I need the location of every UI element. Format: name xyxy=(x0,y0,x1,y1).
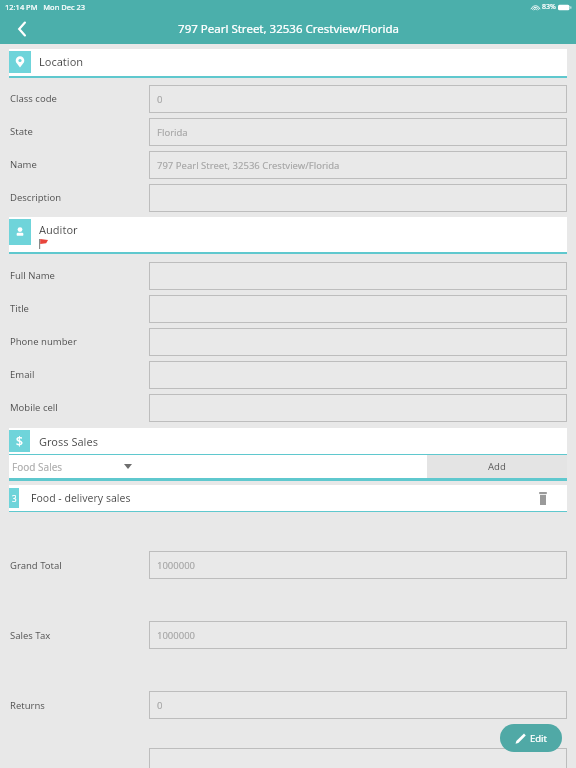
staticText: Gross Sales xyxy=(39,434,98,449)
button[interactable]: Food Sales xyxy=(9,455,427,478)
staticText: Name xyxy=(10,158,37,171)
button[interactable]: State xyxy=(0,115,576,148)
staticText: Title xyxy=(10,302,29,315)
button[interactable]: Delete xyxy=(533,488,553,508)
staticText: Food - delivery sales xyxy=(31,491,131,505)
button[interactable]: Phone number xyxy=(0,325,576,358)
staticText: Mobile cell xyxy=(10,401,58,414)
staticText: Class code xyxy=(10,92,57,105)
staticText: Location xyxy=(39,54,84,69)
staticText: Edit xyxy=(530,732,548,745)
staticText: Grand Total xyxy=(10,559,62,572)
staticText: 3 xyxy=(12,493,17,504)
staticText: 1000000 xyxy=(157,559,196,572)
button[interactable]: Location xyxy=(9,49,567,78)
button[interactable]: Edit xyxy=(500,724,562,752)
staticText: 1000000 xyxy=(157,629,196,642)
staticText: Returns xyxy=(10,699,45,712)
button[interactable]: Sales Tax xyxy=(0,600,576,670)
staticText: 797 Pearl Street, 32536 Crestview/Florid… xyxy=(178,21,399,37)
staticText: 797 Pearl Street, 32536 Crestview/Florid… xyxy=(157,159,340,172)
staticText: Add xyxy=(488,460,506,473)
staticText: Auditor xyxy=(39,222,78,237)
staticText: 83% xyxy=(542,2,556,12)
staticText: Phone number xyxy=(10,335,77,348)
button[interactable]: Full Name xyxy=(0,259,576,292)
staticText: 0 xyxy=(157,699,163,712)
button[interactable]: Grand Total xyxy=(0,530,576,600)
button[interactable]: $ xyxy=(9,428,567,455)
staticText: State xyxy=(10,125,33,138)
button[interactable]: Back xyxy=(0,14,44,44)
staticText: Email xyxy=(10,368,35,381)
button[interactable]: Returns xyxy=(0,670,576,740)
button[interactable]: Class code xyxy=(0,82,576,115)
button[interactable]: Add xyxy=(427,455,567,478)
button[interactable]: Auditor xyxy=(9,217,567,254)
staticText: 0 xyxy=(157,93,163,106)
staticText: Food Sales xyxy=(12,460,63,474)
staticText: Florida xyxy=(157,126,188,139)
button[interactable]: Mobile cell xyxy=(0,391,576,424)
button[interactable]: 3 xyxy=(9,485,567,511)
staticText: 12:14 PM Mon Dec 23 xyxy=(5,2,86,12)
staticText: Description xyxy=(10,191,62,204)
button[interactable]: Name xyxy=(0,148,576,181)
button[interactable]: Title xyxy=(0,292,576,325)
staticText: Full Name xyxy=(10,269,55,282)
button[interactable]: Description xyxy=(0,181,576,214)
staticText: Sales Tax xyxy=(10,629,51,642)
staticText: $ xyxy=(16,433,23,449)
button[interactable]: Email xyxy=(0,358,576,391)
